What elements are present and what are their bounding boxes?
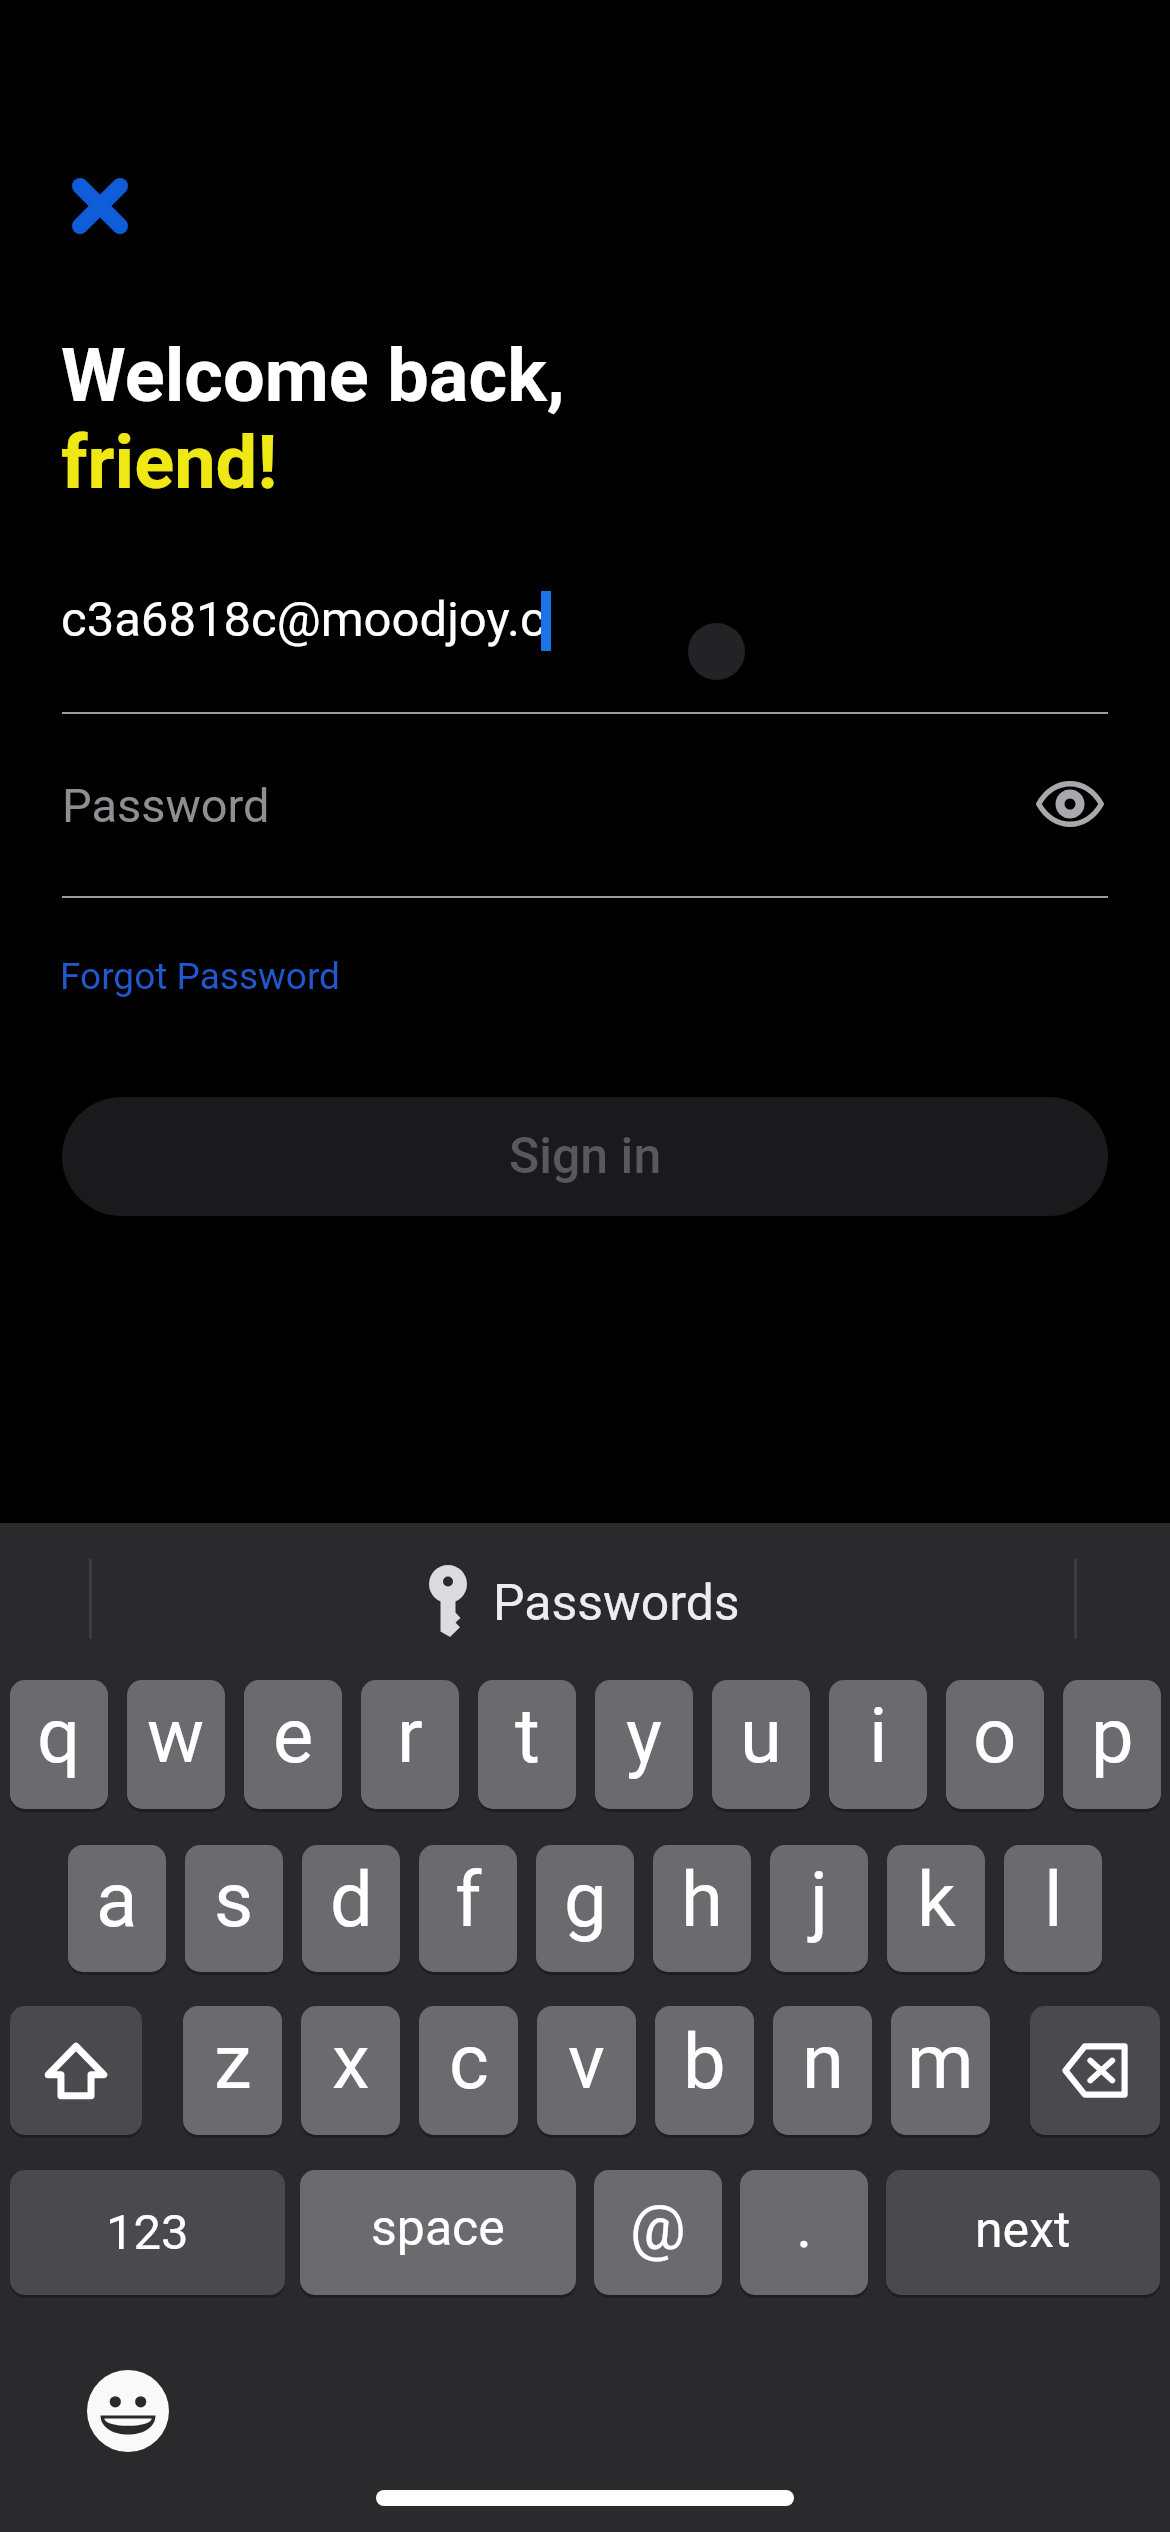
staticText: l	[1044, 1855, 1063, 1944]
staticText: 123	[106, 2204, 189, 2261]
button[interactable]: Emoji	[86, 2369, 170, 2453]
staticText: a	[96, 1855, 138, 1944]
button[interactable]: o	[946, 1680, 1044, 1809]
button[interactable]: k	[887, 1845, 985, 1972]
button[interactable]: q	[10, 1680, 108, 1809]
button[interactable]: y	[595, 1680, 693, 1809]
button[interactable]: g	[536, 1845, 634, 1972]
staticText: u	[740, 1691, 782, 1780]
staticText: x	[332, 2017, 370, 2106]
staticText: i	[869, 1691, 888, 1780]
staticText: Sign in	[509, 1127, 662, 1186]
staticText: p	[1091, 1691, 1134, 1780]
button[interactable]: r	[361, 1680, 459, 1809]
button[interactable]: Shift	[10, 2006, 142, 2135]
button[interactable]: u	[712, 1680, 810, 1809]
button[interactable]: n	[773, 2006, 872, 2135]
staticText: t	[515, 1691, 540, 1780]
staticText: Welcome back,	[61, 332, 565, 419]
staticText: d	[330, 1855, 373, 1944]
button[interactable]: x	[301, 2006, 400, 2135]
button[interactable]: p	[1063, 1680, 1161, 1809]
button[interactable]: i	[829, 1680, 927, 1809]
button[interactable]: c	[419, 2006, 518, 2135]
button[interactable]: Passwords	[410, 1547, 760, 1659]
staticText: n	[802, 2017, 844, 2106]
button[interactable]: Forgot Password	[60, 955, 340, 998]
button[interactable]: l	[1004, 1845, 1102, 1972]
staticText: .	[796, 2189, 813, 2262]
staticText: @	[630, 2191, 686, 2264]
staticText: w	[147, 1691, 205, 1780]
staticText: v	[568, 2017, 605, 2106]
staticText: h	[681, 1855, 723, 1944]
staticText: s	[214, 1855, 254, 1944]
button[interactable]: Backspace	[1030, 2006, 1160, 2135]
button[interactable]: m	[891, 2006, 990, 2135]
staticText: Passwords	[493, 1574, 740, 1633]
button[interactable]: z	[183, 2006, 282, 2135]
button[interactable]: space	[300, 2170, 576, 2295]
button[interactable]: j	[770, 1845, 868, 1972]
staticText: r	[397, 1691, 423, 1780]
button[interactable]: Clear text	[688, 623, 745, 680]
button[interactable]: Show password	[1032, 766, 1108, 842]
button[interactable]: f	[419, 1845, 517, 1972]
button[interactable]: a	[68, 1845, 166, 1972]
staticText: c3a6818c@moodjoy.c	[61, 591, 546, 648]
staticText: friend!	[61, 419, 278, 506]
button[interactable]: 123	[10, 2170, 285, 2295]
staticText: q	[37, 1691, 81, 1780]
button[interactable]: b	[655, 2006, 754, 2135]
staticText: f	[455, 1855, 482, 1944]
staticText: next	[975, 2201, 1071, 2260]
button[interactable]: Sign in	[62, 1097, 1108, 1216]
staticText: j	[810, 1855, 829, 1944]
staticText: space	[371, 2199, 505, 2258]
button[interactable]: s	[185, 1845, 283, 1972]
button[interactable]: e	[244, 1680, 342, 1809]
staticText: Password	[62, 778, 270, 833]
button[interactable]: .	[740, 2170, 868, 2295]
staticText: y	[626, 1691, 662, 1780]
staticText: k	[917, 1855, 956, 1944]
button[interactable]: d	[302, 1845, 400, 1972]
button[interactable]: v	[537, 2006, 636, 2135]
button[interactable]: t	[478, 1680, 576, 1809]
staticText: z	[214, 2017, 252, 2106]
button[interactable]: Close	[40, 146, 160, 266]
staticText: g	[564, 1855, 607, 1944]
staticText: b	[683, 2017, 726, 2106]
staticText: e	[273, 1691, 314, 1780]
staticText: c	[449, 2017, 489, 2106]
button[interactable]: next	[886, 2170, 1160, 2295]
staticText: Forgot Password	[60, 955, 340, 998]
button[interactable]: @	[594, 2170, 722, 2295]
staticText: m	[907, 2017, 974, 2106]
button[interactable]: w	[127, 1680, 225, 1809]
staticText: o	[973, 1691, 1017, 1780]
button[interactable]: h	[653, 1845, 751, 1972]
